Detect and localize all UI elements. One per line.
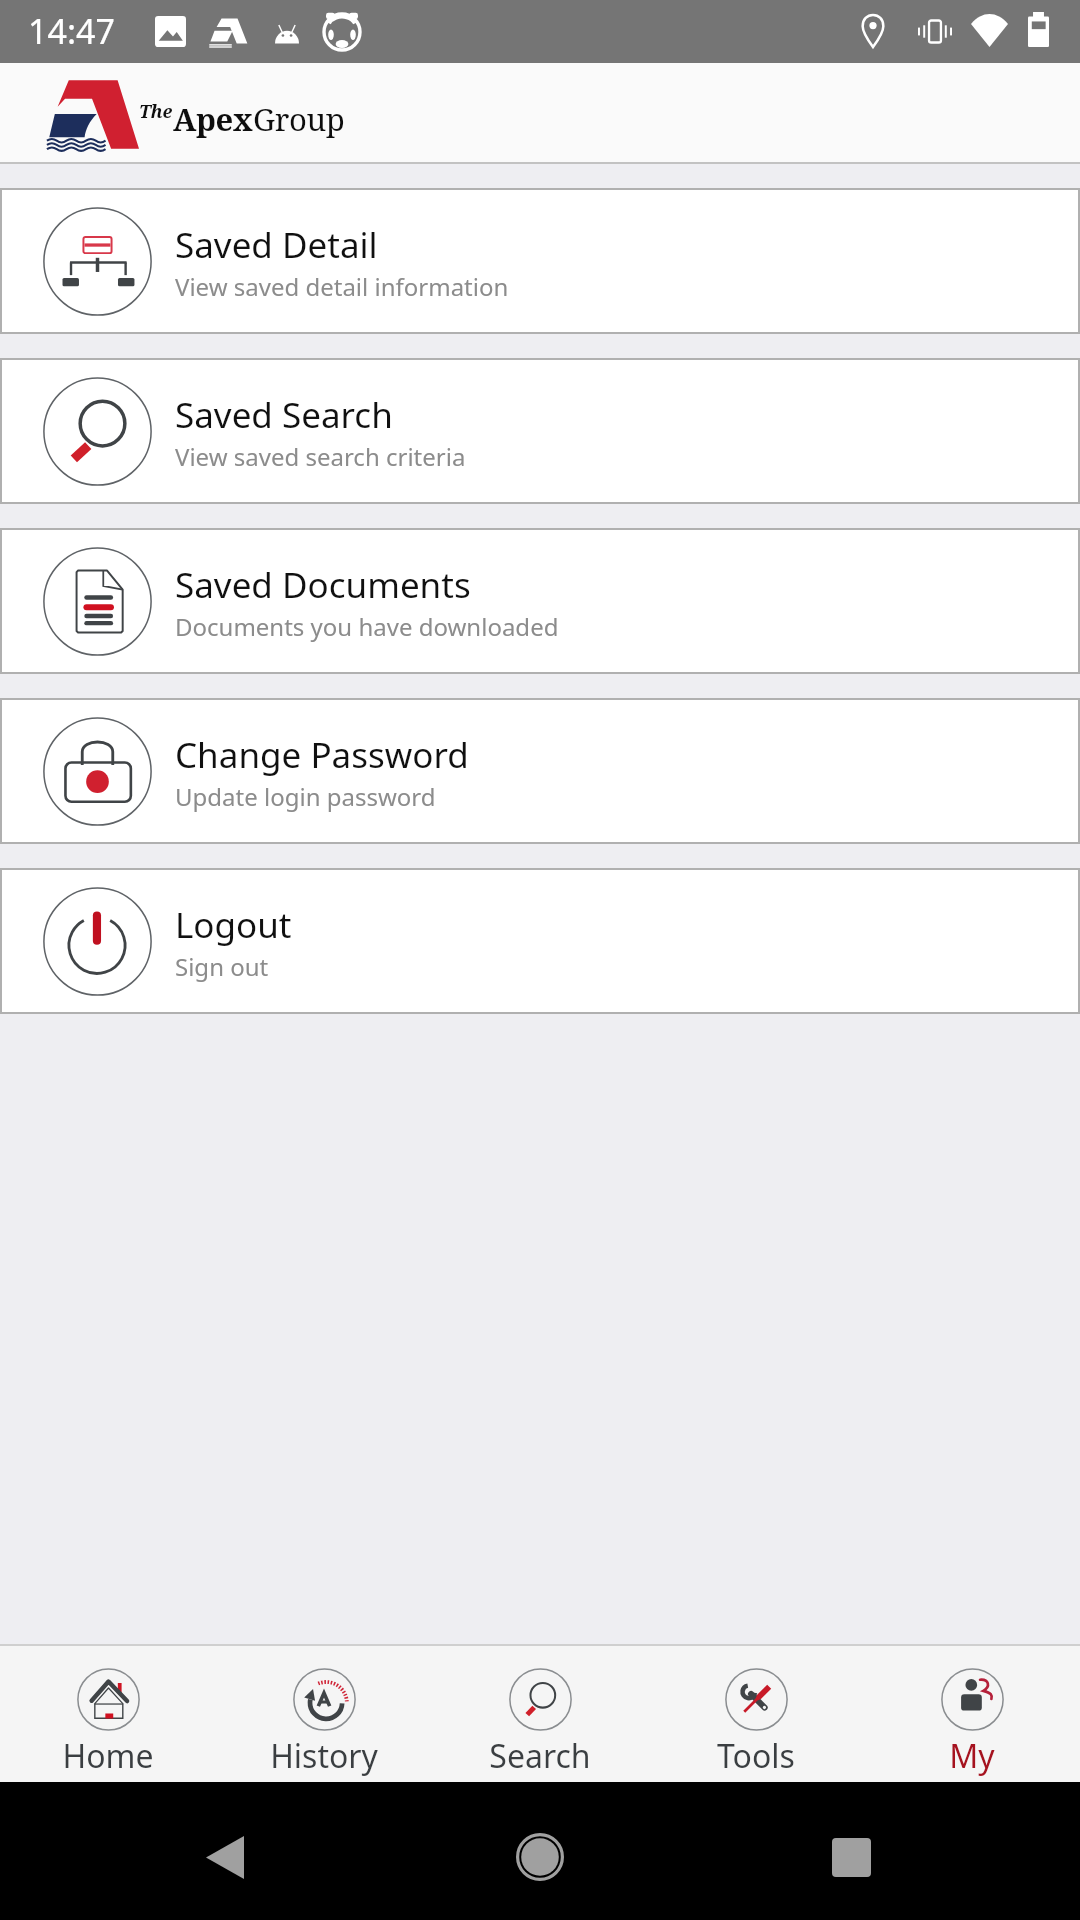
staticText: Documents you have downloaded [175,610,559,643]
button[interactable]: Saved Detail [0,190,1080,332]
button[interactable]: Back [181,1813,269,1901]
staticText: Search [489,1734,591,1778]
button[interactable]: Saved Search [0,360,1080,502]
staticText: 14:47 [28,8,115,54]
button[interactable]: Tools [648,1646,864,1782]
button[interactable]: Search [432,1646,648,1782]
staticText: Apex [173,98,253,140]
button[interactable]: Recent apps [807,1813,895,1901]
button[interactable]: History [216,1646,432,1782]
staticText: Home [62,1734,154,1778]
staticText: Saved Documents [175,561,471,609]
staticText: Saved Detail [175,221,378,269]
staticText: Sign out [175,950,269,983]
button[interactable]: My [864,1646,1080,1782]
staticText: My [949,1734,995,1778]
staticText: View saved detail information [175,270,509,303]
button[interactable]: Home [0,1646,216,1782]
staticText: Change Password [175,731,469,779]
staticText: History [270,1734,378,1778]
staticText: Update login password [175,780,436,813]
staticText: Group [253,98,345,140]
button[interactable]: Change Password [0,700,1080,842]
staticText: Saved Search [175,391,393,439]
staticText: The [139,99,173,124]
button[interactable]: Saved Documents [0,530,1080,672]
staticText: Tools [717,1734,795,1778]
button[interactable]: Logout [0,870,1080,1012]
button[interactable]: Home [496,1813,584,1901]
staticText: Logout [175,901,292,949]
staticText: View saved search criteria [175,440,466,473]
